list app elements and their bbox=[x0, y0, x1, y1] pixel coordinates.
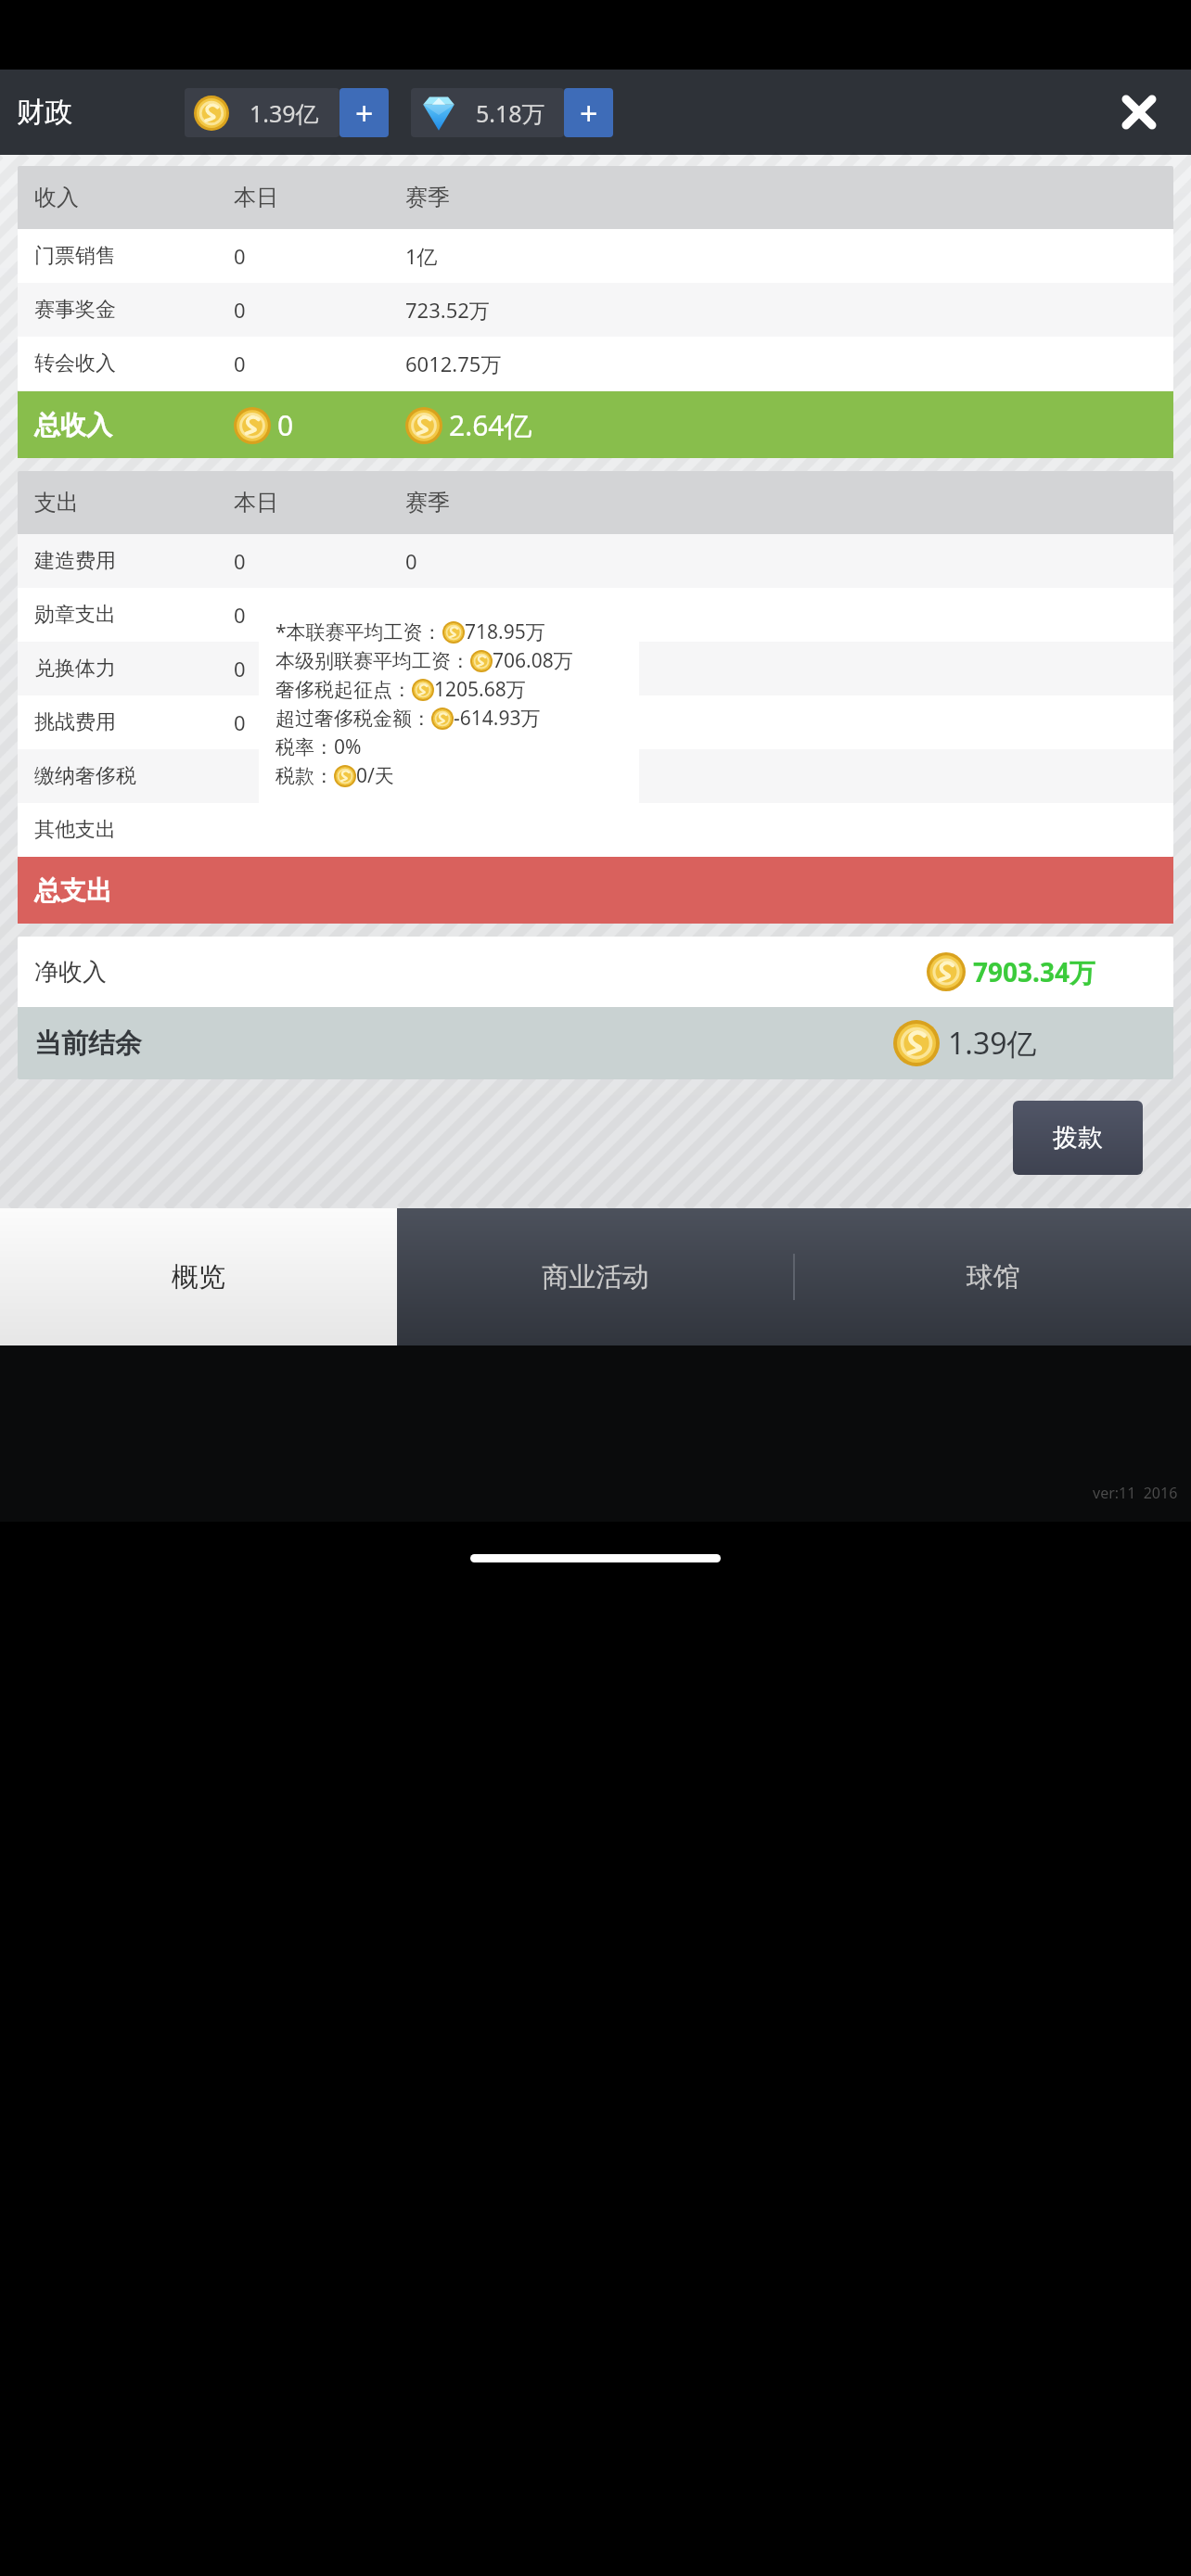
staticText: 超过奢侈税金额： bbox=[275, 707, 431, 731]
button[interactable]: 球馆 bbox=[795, 1208, 1191, 1345]
staticText: 0 bbox=[234, 601, 405, 629]
staticText: 0 bbox=[234, 708, 405, 736]
staticText: 0/天 bbox=[356, 762, 394, 789]
button[interactable]: 总收入 bbox=[18, 391, 1173, 458]
staticText bbox=[234, 762, 405, 790]
button[interactable]: 赛事奖金 bbox=[18, 283, 1173, 337]
staticText: *本联赛平均工资： bbox=[275, 618, 442, 645]
staticText: 2.64亿 bbox=[449, 406, 532, 444]
staticText: 转会收入 bbox=[34, 351, 234, 376]
button[interactable]: 5.18万 bbox=[411, 88, 564, 137]
staticText: 建造费用 bbox=[34, 548, 234, 574]
staticText: ver:11 2016 bbox=[1093, 1483, 1178, 1503]
staticText: 当前结余 bbox=[34, 1027, 893, 1061]
staticText: 0 bbox=[405, 547, 417, 575]
button[interactable]: 拨款 bbox=[1013, 1101, 1143, 1175]
staticText: 商业活动 bbox=[542, 1260, 649, 1294]
staticText: 5000 bbox=[405, 601, 453, 629]
staticText: 1205.68万 bbox=[434, 676, 526, 703]
staticText: 0 bbox=[234, 296, 405, 324]
button[interactable]: 净收入 bbox=[18, 937, 1173, 1007]
staticText: 0 bbox=[234, 242, 405, 270]
staticText: 净收入 bbox=[34, 957, 927, 988]
button[interactable]: 其他支出 bbox=[18, 803, 1173, 857]
staticText: 20.20万 bbox=[405, 708, 479, 736]
staticText: 本日 bbox=[234, 489, 405, 516]
staticText: 税率：0% bbox=[275, 733, 362, 760]
staticText: + bbox=[355, 92, 374, 134]
staticText: 赛事奖金 bbox=[34, 297, 234, 323]
staticText: 0 bbox=[234, 547, 405, 575]
button[interactable]: Close bbox=[1113, 86, 1165, 138]
button[interactable]: 转会收入 bbox=[18, 337, 1173, 390]
button[interactable]: 总支出 bbox=[18, 857, 1173, 924]
button[interactable]: 1.39亿 bbox=[185, 88, 339, 137]
staticText: -614.93万 bbox=[454, 705, 541, 732]
staticText: 支出 bbox=[34, 489, 234, 516]
button[interactable]: 财政 bbox=[17, 95, 72, 130]
staticText: 球馆 bbox=[967, 1260, 1020, 1294]
staticText: 其他支出 bbox=[34, 817, 234, 843]
staticText: 赛季 bbox=[405, 489, 450, 516]
staticText: 851.20万 bbox=[405, 655, 490, 682]
button[interactable]: Add coins bbox=[339, 88, 389, 137]
staticText: 勋章支出 bbox=[34, 602, 234, 628]
button[interactable]: Add gems bbox=[564, 88, 613, 137]
staticText: 收入 bbox=[34, 184, 234, 211]
staticText: 挑战费用 bbox=[34, 709, 234, 735]
button[interactable]: 兑换体力 bbox=[18, 642, 1173, 695]
staticText: 兑换体力 bbox=[34, 656, 234, 682]
staticText: 赛季 bbox=[405, 184, 450, 211]
staticText: 概览 bbox=[172, 1260, 225, 1294]
staticText: 0 bbox=[234, 655, 405, 682]
staticText: 723.52万 bbox=[405, 296, 490, 324]
staticText: 门票销售 bbox=[34, 243, 234, 269]
button[interactable]: 门票销售 bbox=[18, 229, 1173, 283]
staticText: 奢侈税起征点： bbox=[275, 678, 412, 702]
staticText: 总收入 bbox=[34, 409, 234, 441]
staticText: 1.39亿 bbox=[948, 1023, 1037, 1064]
button[interactable]: 勋章支出 bbox=[18, 588, 1173, 642]
staticText: + bbox=[580, 92, 598, 134]
button[interactable]: 建造费用 bbox=[18, 534, 1173, 588]
staticText: 718.95万 bbox=[465, 618, 545, 645]
staticText: 6012.75万 bbox=[405, 350, 502, 377]
staticText: 税款： bbox=[275, 764, 334, 788]
staticText: 5.18万 bbox=[476, 97, 545, 129]
button[interactable]: 缴纳奢侈税 bbox=[18, 749, 1173, 803]
staticText: 7903.34万 bbox=[973, 954, 1095, 989]
staticText: 0 bbox=[277, 406, 294, 444]
staticText: 总支出 bbox=[34, 874, 112, 907]
staticText: 本级别联赛平均工资： bbox=[275, 649, 470, 673]
staticText: 拨款 bbox=[1053, 1122, 1103, 1154]
staticText: 缴纳奢侈税 bbox=[34, 763, 234, 789]
button[interactable]: 商业活动 bbox=[397, 1208, 793, 1345]
button[interactable]: 概览 bbox=[0, 1208, 397, 1345]
staticText: 0 bbox=[234, 350, 405, 377]
staticText: 本日 bbox=[234, 184, 405, 211]
staticText: 1亿 bbox=[405, 242, 438, 270]
button[interactable]: 当前结余 bbox=[18, 1007, 1173, 1079]
staticText: 1.39亿 bbox=[250, 97, 319, 129]
staticText: 706.08万 bbox=[493, 647, 573, 674]
button[interactable]: 挑战费用 bbox=[18, 695, 1173, 749]
